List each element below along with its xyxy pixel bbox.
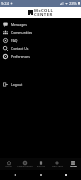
staticText: COMMUNITIES	[17, 165, 33, 168]
button[interactable]: Communities	[0, 28, 81, 36]
button[interactable]: MORE	[65, 158, 81, 170]
button[interactable]: FAQ	[0, 36, 81, 44]
button[interactable]: EVENTS	[33, 158, 49, 170]
staticText: 23%	[69, 1, 77, 6]
button[interactable]: Recent apps	[62, 171, 70, 179]
staticText: EVENTS	[37, 165, 45, 168]
button[interactable]: Logout	[0, 80, 81, 88]
staticText: WELLNESS	[52, 165, 63, 168]
staticText: HOME	[5, 165, 12, 168]
staticText: Messages	[11, 22, 27, 27]
staticText: Logout	[11, 82, 23, 87]
staticText: Preferences	[11, 54, 30, 59]
button[interactable]: WELLNESS	[49, 158, 65, 170]
button[interactable]: Home	[37, 171, 45, 179]
staticText: MORE	[70, 165, 77, 168]
staticText: Communities	[11, 30, 33, 35]
button[interactable]: Preferences	[0, 52, 81, 60]
staticText: McCOLL CENTER	[34, 8, 54, 17]
button[interactable]: Contact Us	[0, 44, 81, 52]
staticText: FAQ	[11, 38, 18, 43]
staticText: 9:24	[1, 1, 9, 6]
button[interactable]: COMMUNITIES	[17, 158, 33, 170]
staticText: Contact Us	[11, 46, 29, 51]
button[interactable]: HOME	[0, 158, 17, 170]
button[interactable]: Messages	[0, 20, 81, 28]
button[interactable]: Back	[11, 171, 19, 179]
